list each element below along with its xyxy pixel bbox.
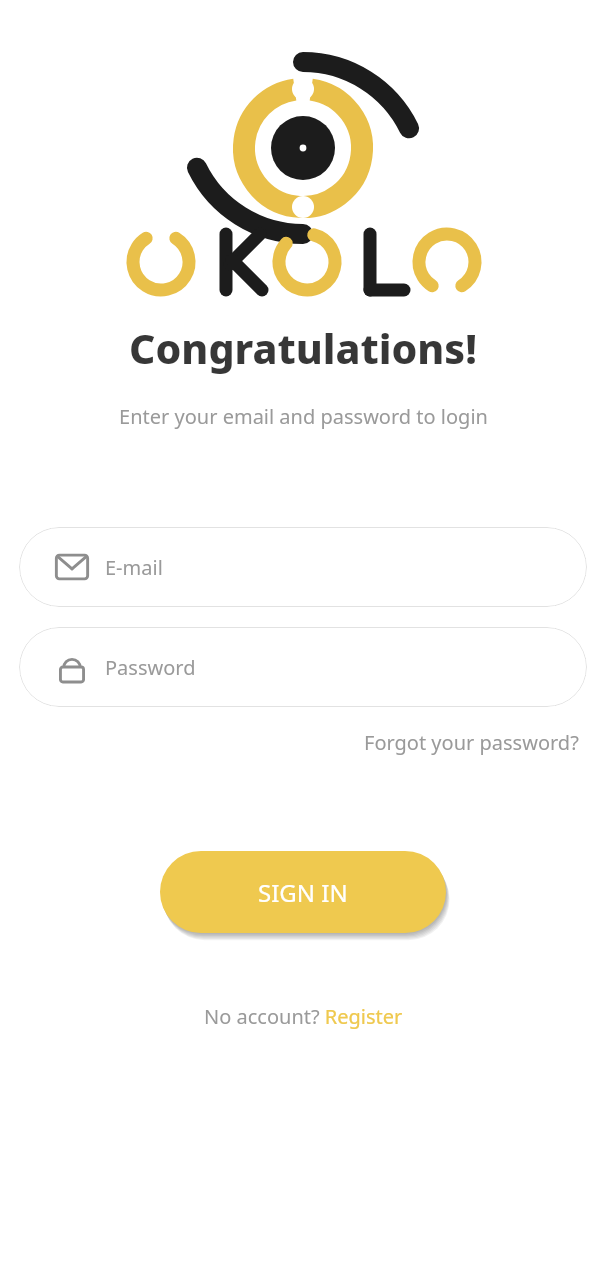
staticText: Forgot your password? (364, 729, 579, 756)
other: E-mail (55, 550, 89, 584)
staticText: Enter your email and password to login (119, 403, 488, 430)
button[interactable]: No account? Register (198, 999, 409, 1034)
button[interactable]: SIGN IN (160, 851, 446, 933)
button[interactable]: Forgot your password? (360, 725, 583, 760)
other: Password (55, 650, 89, 684)
staticText: E-mail (105, 554, 163, 581)
button[interactable]: E-mail (19, 527, 587, 607)
staticText: No account? Register (204, 1003, 403, 1030)
staticText: Congratulations! (129, 320, 477, 376)
staticText: Password (105, 654, 196, 681)
button[interactable]: Password (19, 627, 587, 707)
staticText: SIGN IN (258, 876, 348, 909)
